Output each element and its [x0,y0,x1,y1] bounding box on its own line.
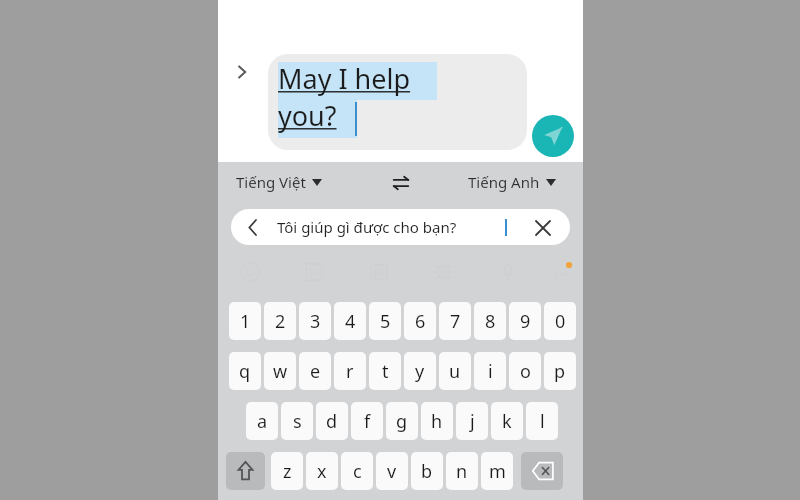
button[interactable]: 4 [334,302,366,340]
staticText: r [346,359,354,384]
button[interactable]: c [341,452,373,490]
staticText: May I help [278,60,411,97]
other: Expand [234,62,250,82]
staticText: 8 [485,309,496,334]
staticText: 6 [415,309,426,334]
button[interactable]: a [246,402,278,440]
staticText: y [415,359,425,384]
button[interactable]: 2 [264,302,296,340]
staticText: 3 [310,309,321,334]
staticText: d [326,409,338,434]
button[interactable]: x [306,452,338,490]
staticText: 5 [380,309,391,334]
button[interactable]: h [421,402,453,440]
staticText: t [382,359,389,384]
staticText: k [502,409,512,434]
button[interactable]: q [229,352,261,390]
button[interactable]: 6 [404,302,436,340]
button[interactable]: 1 [229,302,261,340]
staticText: b [421,459,433,484]
button[interactable]: o [509,352,541,390]
staticText: n [456,459,468,484]
button[interactable]: v [376,452,408,490]
staticText: e [310,359,321,384]
staticText: 7 [450,309,461,334]
staticText: x [317,459,327,484]
button[interactable]: e [299,352,331,390]
staticText: c [353,459,362,484]
staticText: s [293,409,302,434]
button[interactable]: d [316,402,348,440]
button[interactable]: May I help [268,54,527,150]
staticText: i [488,359,493,384]
staticText: you? [278,97,337,134]
button[interactable]: n [446,452,478,490]
staticText: w [273,359,288,384]
staticText: f [364,409,371,434]
button[interactable]: w [264,352,296,390]
button[interactable]: i [474,352,506,390]
button[interactable]: m [481,452,513,490]
staticText: 1 [240,309,251,334]
staticText: 4 [345,309,356,334]
button[interactable]: Swap languages [388,170,414,196]
button[interactable]: r [334,352,366,390]
staticText: m [489,459,506,484]
button[interactable]: Backspace [521,452,563,490]
button[interactable]: b [411,452,443,490]
other: Clear [536,221,550,235]
button[interactable]: Back [231,209,570,245]
button[interactable]: p [544,352,576,390]
staticText: Tôi giúp gì được cho bạn? [277,217,457,237]
button[interactable]: Tiếng Anh [468,172,556,192]
button[interactable]: y [404,352,436,390]
button[interactable]: 5 [369,302,401,340]
staticText: q [239,359,251,384]
staticText: 0 [555,309,566,334]
button[interactable]: Tiếng Việt [236,172,322,192]
button[interactable]: l [526,402,558,440]
button[interactable]: Shift [226,452,265,490]
staticText: v [387,459,397,484]
button[interactable]: u [439,352,471,390]
button[interactable]: f [351,402,383,440]
button[interactable]: t [369,352,401,390]
staticText: h [431,409,443,434]
staticText: Tiếng Việt [236,172,306,192]
staticText: g [396,409,408,434]
button[interactable]: g [386,402,418,440]
other: Back [247,220,259,235]
staticText: 2 [275,309,286,334]
button[interactable]: Send [532,115,574,157]
staticText: p [554,359,566,384]
staticText: u [449,359,461,384]
button[interactable]: More options [551,261,573,283]
staticText: l [540,409,545,434]
staticText: 9 [520,309,531,334]
button[interactable]: 3 [299,302,331,340]
button[interactable]: 8 [474,302,506,340]
staticText: a [257,409,268,434]
staticText: j [470,409,475,434]
button[interactable]: k [491,402,523,440]
button[interactable]: j [456,402,488,440]
staticText: Tiếng Anh [468,172,540,192]
staticText: z [283,459,292,484]
staticText: o [520,359,531,384]
button[interactable]: 0 [544,302,576,340]
button[interactable]: 7 [439,302,471,340]
button[interactable]: s [281,402,313,440]
button[interactable]: 9 [509,302,541,340]
button[interactable]: z [271,452,303,490]
